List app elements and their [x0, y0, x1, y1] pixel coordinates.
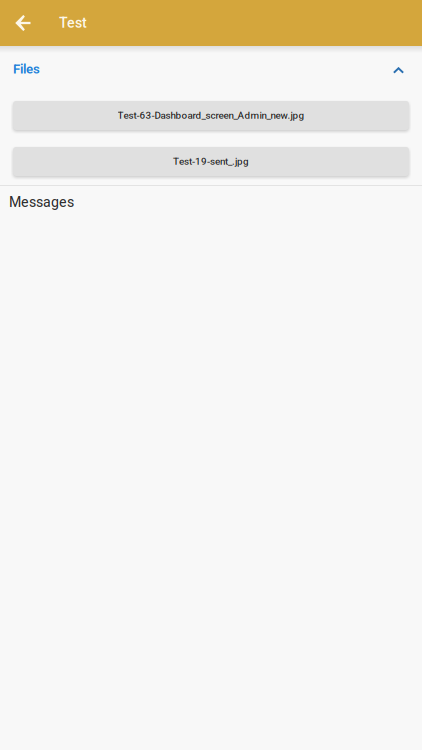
staticText: Messages [9, 194, 74, 211]
button[interactable]: Test-63-Dashboard_screen_Admin_new.jpg [13, 101, 409, 130]
staticText: Files [13, 61, 40, 77]
button[interactable]: Files [0, 46, 422, 92]
staticText: Test-19-sent_.jpg [173, 156, 249, 167]
button[interactable]: Back [8, 0, 39, 46]
staticText: Test [59, 15, 87, 31]
button[interactable]: Test-19-sent_.jpg [13, 147, 409, 176]
staticText: Test-63-Dashboard_screen_Admin_new.jpg [117, 110, 304, 121]
